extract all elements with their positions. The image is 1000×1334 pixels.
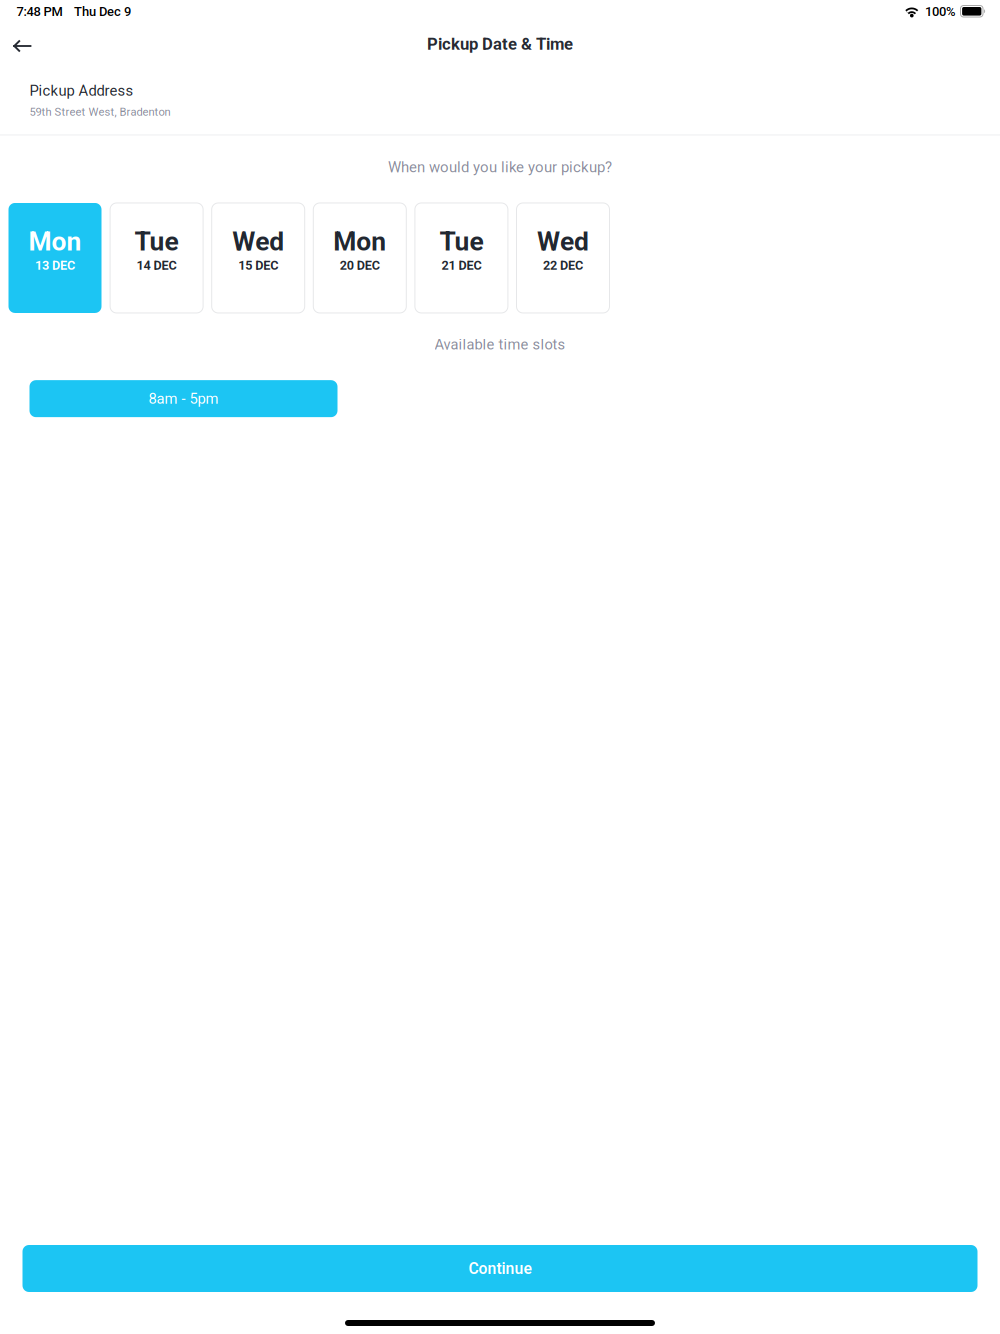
- button[interactable]: Tue: [415, 203, 508, 313]
- staticText: Wed: [537, 226, 589, 257]
- staticText: 7:48 PM: [16, 4, 62, 19]
- staticText: Tue: [439, 226, 483, 257]
- staticText: Tue: [135, 226, 179, 257]
- staticText: Thu Dec 9: [74, 4, 131, 19]
- staticText: Mon: [28, 226, 81, 257]
- button[interactable]: Continue: [22, 1245, 977, 1292]
- button[interactable]: 8am - 5pm: [29, 380, 337, 417]
- staticText: Pickup Date & Time: [427, 34, 573, 54]
- button[interactable]: Mon: [8, 203, 101, 313]
- staticText: 13 DEC: [35, 258, 75, 273]
- staticText: 22 DEC: [543, 258, 583, 273]
- staticText: 15 DEC: [238, 258, 278, 273]
- staticText: Pickup Address: [29, 82, 133, 99]
- button[interactable]: Back: [0, 23, 44, 65]
- staticText: When would you like your pickup?: [388, 158, 612, 176]
- staticText: Mon: [333, 226, 386, 257]
- staticText: Available time slots: [434, 336, 565, 353]
- staticText: Wed: [232, 226, 284, 257]
- staticText: Continue: [468, 1259, 531, 1278]
- staticText: 100%: [925, 4, 956, 19]
- button[interactable]: Wed: [516, 203, 609, 313]
- staticText: 59th Street West, Bradenton: [29, 105, 170, 118]
- staticText: 20 DEC: [340, 258, 380, 273]
- button[interactable]: Tue: [110, 203, 203, 313]
- button[interactable]: Mon: [313, 203, 406, 313]
- staticText: 14 DEC: [137, 258, 177, 273]
- staticText: 21 DEC: [441, 258, 481, 273]
- button[interactable]: Wed: [212, 203, 305, 313]
- staticText: 8am - 5pm: [148, 390, 218, 407]
